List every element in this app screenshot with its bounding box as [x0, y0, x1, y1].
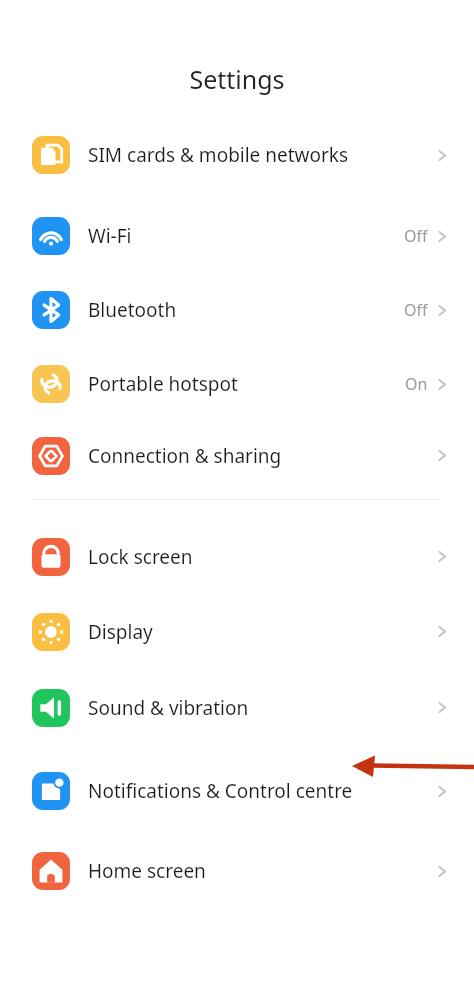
- button[interactable]: Wi-Fi: [0, 199, 474, 273]
- staticText: SIM cards & mobile networks: [88, 142, 431, 168]
- staticText: Off: [404, 299, 428, 321]
- button[interactable]: Notifications and Control centre: [0, 746, 474, 836]
- staticText: Home screen: [88, 858, 431, 884]
- button[interactable]: Display: [0, 594, 474, 669]
- staticText: Portable hotspot: [88, 371, 405, 397]
- staticText: On: [405, 373, 428, 395]
- staticText: Lock screen: [88, 544, 431, 570]
- button[interactable]: Lock screen: [0, 519, 474, 594]
- staticText: Settings: [189, 62, 285, 96]
- button[interactable]: SIM cards and mobile networks: [0, 111, 474, 199]
- button[interactable]: Portable hotspot: [0, 347, 474, 421]
- staticText: Bluetooth: [88, 297, 404, 323]
- button[interactable]: Bluetooth: [0, 273, 474, 347]
- staticText: Display: [88, 619, 431, 645]
- staticText: Wi-Fi: [88, 223, 404, 249]
- button[interactable]: Sound and vibration: [0, 669, 474, 746]
- staticText: Notifications & Control centre: [88, 778, 431, 804]
- staticText: Sound & vibration: [88, 695, 431, 721]
- staticText: Connection & sharing: [88, 443, 431, 469]
- button[interactable]: Home screen: [0, 836, 474, 906]
- staticText: Off: [404, 225, 428, 247]
- button[interactable]: Connection and sharing: [0, 421, 474, 490]
